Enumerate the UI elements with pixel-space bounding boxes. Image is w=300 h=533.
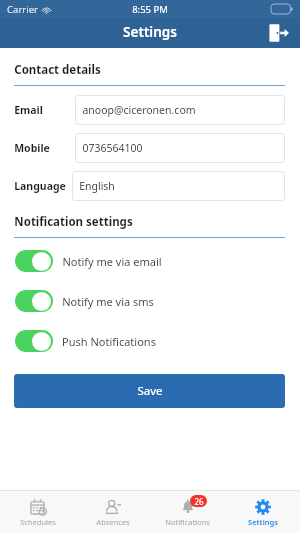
button[interactable]: Absences: [75, 497, 150, 527]
staticText: anoop@ciceronen.com: [82, 103, 196, 117]
button[interactable]: Notify me via sms: [0, 290, 300, 312]
staticText: 26: [194, 496, 204, 507]
button[interactable]: Notifications: [150, 497, 225, 527]
staticText: Schedules: [20, 517, 56, 527]
button[interactable]: 0736564100: [75, 133, 285, 163]
button[interactable]: Log out: [266, 20, 292, 46]
staticText: Absences: [96, 517, 130, 527]
staticText: Notify me via email: [62, 254, 162, 269]
staticText: Push Notifications: [62, 334, 156, 349]
staticText: Notification settings: [14, 214, 133, 230]
button[interactable]: Settings: [225, 497, 300, 527]
staticText: Save: [137, 383, 163, 399]
staticText: 8:55 PM: [132, 3, 168, 16]
button[interactable]: English: [72, 171, 285, 201]
staticText: Settings: [123, 23, 177, 41]
staticText: Language: [14, 179, 66, 193]
staticText: Notifications: [165, 517, 210, 527]
button[interactable]: Save: [14, 374, 285, 408]
staticText: Carrier: [7, 3, 38, 16]
staticText: Email: [14, 103, 43, 117]
staticText: Mobile: [14, 141, 50, 155]
staticText: Settings: [248, 517, 278, 527]
button[interactable]: Push Notifications: [0, 330, 300, 352]
button[interactable]: anoop@ciceronen.com: [75, 95, 285, 125]
staticText: Contact details: [14, 62, 101, 78]
staticText: 0736564100: [82, 141, 143, 155]
staticText: Notify me via sms: [62, 294, 154, 309]
button[interactable]: Schedules: [0, 497, 75, 527]
staticText: English: [79, 179, 115, 193]
button[interactable]: Notify me via email: [0, 250, 300, 272]
